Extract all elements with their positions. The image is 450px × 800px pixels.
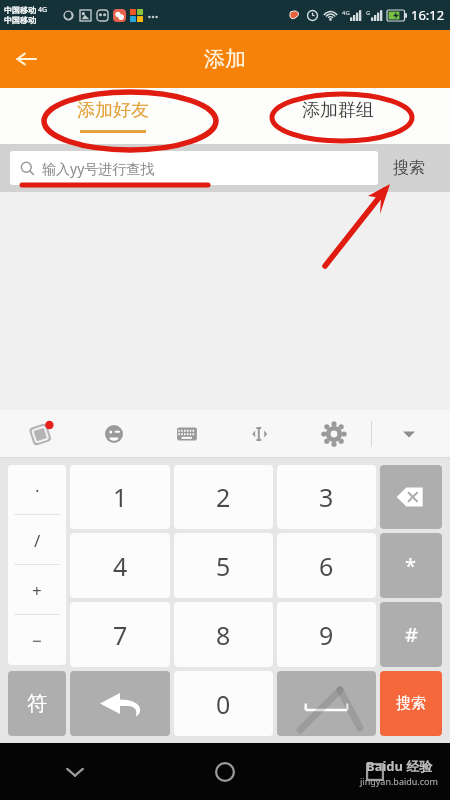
staticText: / (34, 529, 41, 552)
staticText: 中国移动 (4, 15, 36, 25)
button[interactable]: Back (0, 743, 150, 800)
button[interactable]: 输入yy号进行查找 (10, 151, 378, 185)
button[interactable]: Sogou input (4, 410, 77, 458)
button[interactable]: Emoji (77, 410, 150, 458)
staticText: jingyan.baidu.com (360, 775, 438, 787)
button[interactable]: 8 (174, 602, 273, 667)
button[interactable]: 符 (8, 671, 66, 736)
staticText: 搜索 (396, 694, 426, 713)
staticText: 添加群组 (302, 99, 374, 122)
staticText: 添加 (204, 46, 246, 72)
staticText: # (405, 621, 418, 648)
staticText: 1 (113, 480, 128, 514)
button[interactable]: 7 (70, 602, 170, 667)
staticText: 输入yy号进行查找 (42, 159, 155, 178)
staticText: 符 (27, 691, 47, 716)
staticText: 0 (216, 687, 231, 721)
button[interactable]: 添加群组 (225, 88, 450, 144)
staticText: 5 (216, 549, 231, 583)
staticText: 2 (216, 480, 231, 514)
button[interactable]: 0 (174, 671, 273, 736)
button[interactable]: Back (0, 33, 52, 85)
staticText: G (366, 9, 371, 17)
button[interactable]: · (8, 465, 66, 665)
button[interactable]: # (380, 602, 442, 667)
button[interactable]: 搜索 (380, 671, 442, 736)
button[interactable]: Hide keyboard (372, 410, 446, 458)
staticText: Baidu 经验 (366, 757, 433, 775)
staticText: 3 (319, 480, 334, 514)
staticText: 搜索 (393, 158, 425, 178)
button[interactable]: 1 (70, 465, 170, 529)
staticText: 中国移动 (4, 5, 36, 15)
button[interactable]: 9 (277, 602, 376, 667)
staticText: · (35, 479, 40, 502)
button[interactable]: Keyboard (150, 410, 223, 458)
button[interactable]: 6 (277, 533, 376, 598)
button[interactable]: Recents (300, 743, 450, 800)
button[interactable]: Enter (70, 671, 170, 736)
button[interactable]: 搜索 (378, 144, 440, 192)
staticText: 7 (113, 618, 128, 652)
button[interactable]: 2 (174, 465, 273, 529)
button[interactable]: 3 (277, 465, 376, 529)
button[interactable]: Space (277, 671, 376, 736)
staticText: 添加好友 (77, 99, 149, 122)
button[interactable]: 4 (70, 533, 170, 598)
button[interactable]: * (380, 533, 442, 598)
button[interactable]: Settings (297, 410, 371, 458)
button[interactable]: Delete (380, 465, 442, 529)
staticText: 8 (216, 618, 231, 652)
staticText: − (32, 629, 42, 652)
button[interactable]: 5 (174, 533, 273, 598)
staticText: + (32, 579, 42, 602)
staticText: 9 (319, 618, 334, 652)
staticText: 4 (113, 549, 128, 583)
staticText: 16:12 (411, 6, 445, 24)
button[interactable]: Home (150, 743, 300, 800)
staticText: 4G (38, 5, 48, 15)
button[interactable]: 添加好友 (0, 88, 225, 144)
staticText: 4G (342, 9, 350, 17)
staticText: * (405, 552, 417, 579)
staticText: 6 (319, 549, 334, 583)
button[interactable]: Move cursor (223, 410, 297, 458)
